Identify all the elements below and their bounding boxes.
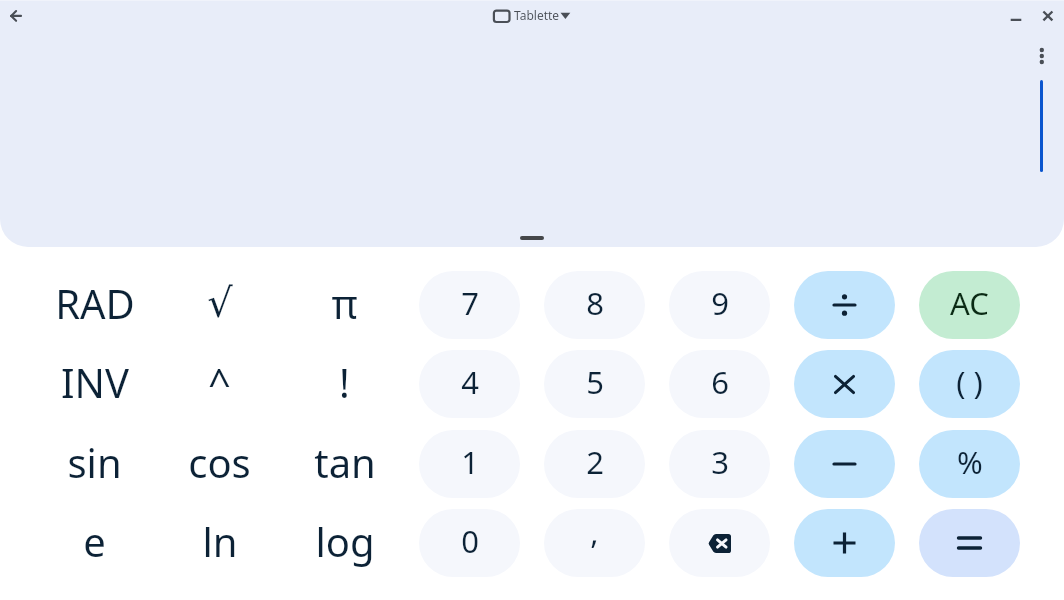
button[interactable]: RAD <box>44 271 145 339</box>
button[interactable]: Equals <box>919 509 1020 577</box>
staticText: 7 <box>461 282 479 324</box>
button[interactable]: Tablette <box>488 2 576 28</box>
button[interactable]: Divide <box>794 271 895 339</box>
staticText: 0 <box>461 520 479 562</box>
staticText: INV <box>61 355 129 409</box>
button[interactable]: ln <box>169 509 270 577</box>
staticText: log <box>315 514 375 568</box>
other: Equals <box>958 536 981 550</box>
button[interactable]: 4 <box>419 350 520 418</box>
button[interactable]: 7 <box>419 271 520 339</box>
staticText: 1 <box>461 441 479 483</box>
staticText: 4 <box>461 361 479 403</box>
button[interactable]: 8 <box>544 271 645 339</box>
staticText: sin <box>67 435 122 489</box>
button[interactable]: cos <box>169 430 270 498</box>
button[interactable]: Back <box>4 4 28 28</box>
button[interactable]: 1 <box>419 430 520 498</box>
staticText: 3 <box>711 441 729 483</box>
button[interactable]: Minus <box>794 430 895 498</box>
staticText: % <box>957 441 983 483</box>
button[interactable]: Backspace <box>669 509 770 577</box>
button[interactable]: tan <box>294 430 395 498</box>
button[interactable]: , <box>544 509 645 577</box>
staticText: tan <box>314 435 376 489</box>
button[interactable]: 3 <box>669 430 770 498</box>
button[interactable]: 2 <box>544 430 645 498</box>
button[interactable]: ( ) <box>919 350 1020 418</box>
staticText: 6 <box>711 361 729 403</box>
staticText: RAD <box>55 276 135 330</box>
staticText: 2 <box>586 441 604 483</box>
button[interactable]: e <box>44 509 145 577</box>
staticText: ! <box>339 355 350 409</box>
staticText: AC <box>950 282 989 324</box>
button[interactable]: 9 <box>669 271 770 339</box>
button[interactable]: Multiply <box>794 350 895 418</box>
button[interactable]: INV <box>44 350 145 418</box>
other: Minus <box>833 461 856 467</box>
other: Plus <box>833 532 856 554</box>
button[interactable]: AC <box>919 271 1020 339</box>
staticText: ( ) <box>956 361 983 403</box>
staticText: 9 <box>711 282 729 324</box>
other: Multiply <box>834 375 855 394</box>
staticText: ^ <box>208 355 231 409</box>
staticText: , <box>590 511 599 553</box>
button[interactable]: sin <box>44 430 145 498</box>
staticText: e <box>83 514 106 568</box>
staticText: 5 <box>586 361 604 403</box>
button[interactable]: π <box>294 271 395 339</box>
other: Backspace <box>708 534 731 553</box>
button[interactable]: 6 <box>669 350 770 418</box>
staticText: Tablette <box>514 7 560 23</box>
button[interactable]: √ <box>169 271 270 339</box>
button[interactable]: Minimize <box>1002 4 1028 30</box>
staticText: cos <box>188 435 251 489</box>
button[interactable]: log <box>294 509 395 577</box>
staticText: 8 <box>586 282 604 324</box>
button[interactable]: % <box>919 430 1020 498</box>
staticText: π <box>331 276 358 330</box>
button[interactable]: ^ <box>169 350 270 418</box>
button[interactable]: 5 <box>544 350 645 418</box>
staticText: √ <box>207 280 233 327</box>
button[interactable]: Plus <box>794 509 895 577</box>
button[interactable]: ! <box>294 350 395 418</box>
button[interactable]: More options <box>1034 44 1050 68</box>
button[interactable]: 0 <box>419 509 520 577</box>
button[interactable]: Close <box>1034 4 1060 30</box>
other: Divide <box>833 295 856 315</box>
staticText: ln <box>202 514 238 568</box>
